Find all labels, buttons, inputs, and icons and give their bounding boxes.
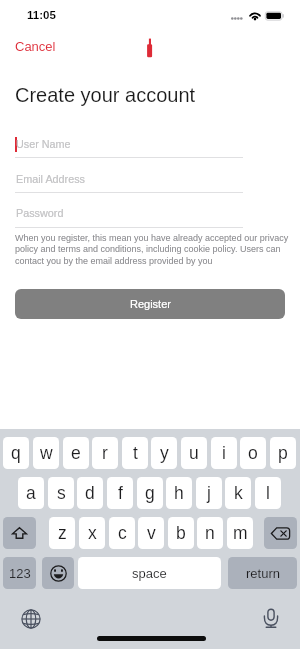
staticText: return <box>246 566 280 581</box>
button[interactable]: c <box>109 517 135 549</box>
staticText: b <box>176 523 186 543</box>
other: Backspace <box>271 527 290 540</box>
staticText: w <box>40 443 53 463</box>
button[interactable]: Dictation <box>261 608 281 628</box>
staticText: s <box>57 483 66 503</box>
button[interactable]: k <box>225 477 251 509</box>
button[interactable]: w <box>33 437 59 469</box>
staticText: c <box>118 523 127 543</box>
staticText: u <box>189 443 199 463</box>
button[interactable]: Change keyboard language <box>21 609 41 629</box>
staticText: t <box>133 443 138 463</box>
staticText: Cancel <box>15 39 56 54</box>
button[interactable]: t <box>122 437 148 469</box>
button[interactable]: v <box>138 517 164 549</box>
staticText: p <box>278 443 288 463</box>
staticText: l <box>266 483 270 503</box>
staticText: When you register, this mean you have al… <box>15 233 292 266</box>
staticText: Password <box>16 207 64 219</box>
button[interactable]: r <box>92 437 118 469</box>
staticText: i <box>222 443 226 463</box>
button[interactable]: f <box>107 477 133 509</box>
button[interactable]: y <box>151 437 177 469</box>
button[interactable]: Backspace <box>264 517 297 549</box>
button[interactable]: s <box>48 477 74 509</box>
button[interactable]: g <box>137 477 163 509</box>
staticText: 11:05 <box>27 9 56 22</box>
button[interactable]: j <box>196 477 222 509</box>
staticText: e <box>71 443 81 463</box>
button[interactable]: l <box>255 477 281 509</box>
button[interactable]: Shift <box>3 517 36 549</box>
button[interactable]: i <box>211 437 237 469</box>
staticText: h <box>174 483 184 503</box>
button[interactable]: 123 <box>3 557 36 589</box>
button[interactable]: Emoji <box>42 557 74 589</box>
button[interactable]: q <box>3 437 29 469</box>
button[interactable]: o <box>240 437 266 469</box>
button[interactable]: u <box>181 437 207 469</box>
button[interactable]: n <box>197 517 223 549</box>
button[interactable]: a <box>18 477 44 509</box>
button[interactable]: p <box>270 437 296 469</box>
button[interactable]: b <box>168 517 194 549</box>
staticText: x <box>88 523 97 543</box>
staticText: d <box>85 483 95 503</box>
staticText: v <box>147 523 156 543</box>
staticText: m <box>233 523 248 543</box>
button[interactable]: d <box>77 477 103 509</box>
staticText: o <box>248 443 258 463</box>
button[interactable]: h <box>166 477 192 509</box>
staticText: y <box>160 443 169 463</box>
staticText: 123 <box>9 566 31 581</box>
button[interactable]: x <box>79 517 105 549</box>
staticText: Email Address <box>16 173 86 185</box>
button[interactable]: m <box>227 517 253 549</box>
button[interactable]: e <box>63 437 89 469</box>
other: Emoji <box>50 565 67 582</box>
staticText: z <box>58 523 67 543</box>
button[interactable]: Register <box>15 289 285 319</box>
staticText: a <box>26 483 36 503</box>
button[interactable]: return <box>228 557 297 589</box>
staticText: k <box>234 483 243 503</box>
staticText: Create your account <box>15 84 196 106</box>
staticText: Register <box>130 298 171 310</box>
staticText: f <box>118 483 123 503</box>
button[interactable]: space <box>78 557 221 589</box>
staticText: g <box>145 483 155 503</box>
staticText: User Name <box>16 138 71 150</box>
staticText: r <box>102 443 108 463</box>
staticText: space <box>132 566 167 581</box>
button[interactable]: z <box>49 517 75 549</box>
other: Shift <box>12 526 27 540</box>
staticText: n <box>205 523 215 543</box>
staticText: q <box>11 443 21 463</box>
button[interactable]: Cancel <box>8 35 63 58</box>
staticText: j <box>207 483 211 503</box>
